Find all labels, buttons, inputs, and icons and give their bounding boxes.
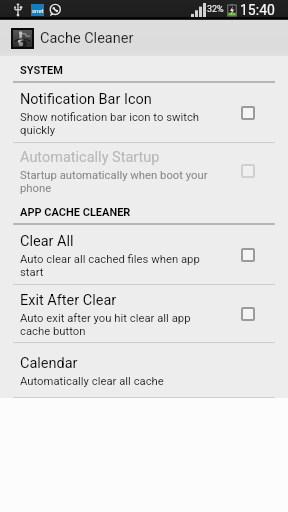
staticText: Clear All: [20, 233, 74, 250]
staticText: SYSTEM: [20, 64, 63, 77]
staticText: Cache Cleaner: [40, 30, 134, 47]
staticText: Auto clear all cached files when app sta…: [20, 253, 210, 279]
staticText: 15:40: [240, 2, 275, 18]
button[interactable]: Exit After Clear: [0, 285, 288, 342]
button[interactable]: Automatically Startup: [0, 143, 288, 198]
button[interactable]: Clear All: [0, 225, 288, 284]
staticText: 32%: [207, 4, 224, 15]
staticText: Calendar: [20, 355, 78, 372]
staticText: APP CACHE CLEANER: [20, 206, 131, 219]
staticText: Show notification bar icon to switch qui…: [20, 111, 210, 137]
other: App icon: [13, 30, 32, 47]
staticText: snet: [32, 7, 44, 14]
button[interactable]: Calendar: [0, 343, 288, 397]
staticText: Automatically Startup: [20, 149, 160, 166]
staticText: Automatically clear all cache: [20, 375, 164, 388]
staticText: Notification Bar Icon: [20, 91, 152, 108]
staticText: Auto exit after you hit clear all app ca…: [20, 312, 210, 338]
staticText: Exit After Clear: [20, 292, 117, 309]
button[interactable]: Notification Bar Icon: [0, 83, 288, 142]
staticText: Startup automatically when boot your pho…: [20, 169, 210, 195]
